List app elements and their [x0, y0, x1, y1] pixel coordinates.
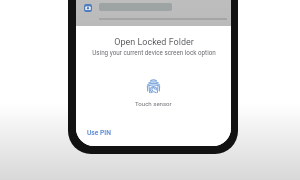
staticText: Touch sensor: [135, 100, 172, 107]
staticText: Use PIN: [87, 129, 111, 137]
staticText: Open Locked Folder: [114, 37, 194, 48]
button[interactable]: Use PIN: [81, 126, 117, 140]
button[interactable]: Photos: [84, 4, 92, 12]
staticText: Using your current device screen lock op…: [92, 49, 216, 56]
button[interactable]: Fingerprint sensor: [147, 78, 160, 93]
